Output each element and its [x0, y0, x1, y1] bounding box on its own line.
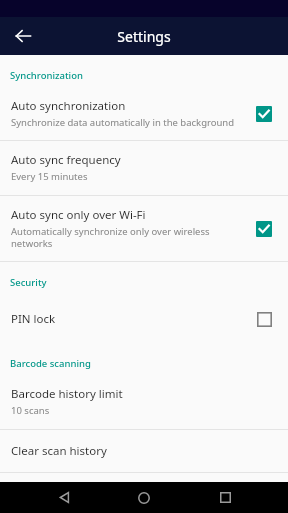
staticText: Synchronize data automatically in the ba…	[11, 116, 235, 129]
staticText: Synchronization	[10, 69, 83, 82]
staticText: Settings	[117, 27, 171, 46]
button[interactable]: Auto synchronization	[0, 88, 288, 140]
staticText: Automatically synchronize only over wire…	[11, 225, 244, 250]
button[interactable]: Toggle setting	[252, 102, 276, 126]
button[interactable]: Home	[127, 482, 161, 513]
button[interactable]: PIN lock	[0, 295, 288, 345]
staticText: 10 scans	[11, 404, 50, 417]
staticText: Security	[10, 276, 47, 289]
button[interactable]: Clear scan history	[0, 430, 288, 472]
staticText: Clear scan history	[11, 443, 107, 459]
button[interactable]: Toggle setting	[252, 307, 276, 331]
button[interactable]: Back	[8, 21, 38, 51]
button[interactable]: Barcode history limit	[0, 376, 288, 429]
button[interactable]: Recent apps	[208, 482, 242, 513]
button[interactable]: Toggle setting	[252, 217, 276, 241]
staticText: Every 15 minutes	[11, 170, 88, 183]
staticText: Auto sync only over Wi-Fi	[11, 207, 146, 223]
staticText: Auto sync frequency	[11, 152, 121, 168]
button[interactable]: Auto sync frequency	[0, 141, 288, 195]
button[interactable]: Back	[47, 482, 81, 513]
staticText: PIN lock	[11, 311, 56, 327]
staticText: Barcode history limit	[11, 386, 123, 402]
staticText: Barcode scanning	[10, 357, 91, 370]
button[interactable]: Auto sync only over Wi-Fi	[0, 196, 288, 261]
staticText: Auto synchronization	[11, 98, 126, 114]
